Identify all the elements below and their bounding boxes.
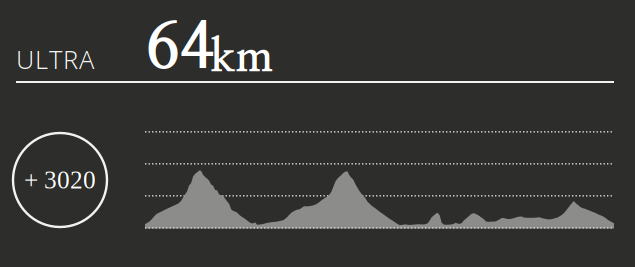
staticText: + 3020 xyxy=(24,166,96,194)
staticText: U xyxy=(16,42,34,76)
staticText: km xyxy=(211,36,273,80)
staticText: T xyxy=(49,42,62,76)
staticText: L xyxy=(35,42,48,76)
staticText: R xyxy=(63,42,78,76)
staticText: A xyxy=(79,42,94,76)
staticText: 64 xyxy=(146,18,214,81)
